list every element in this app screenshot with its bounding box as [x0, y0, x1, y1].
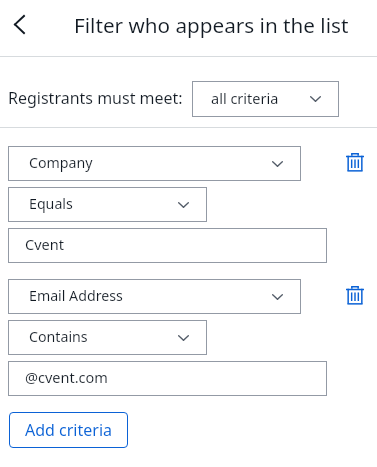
button[interactable]: Contains	[8, 320, 207, 355]
button[interactable]: @cvent.com	[8, 361, 327, 396]
staticText: Contains	[29, 327, 88, 346]
button[interactable]: Delete criteria	[337, 144, 373, 180]
button[interactable]: Email Address	[8, 279, 301, 314]
button[interactable]: Delete criteria	[337, 277, 373, 313]
button[interactable]: Add criteria	[9, 412, 128, 448]
staticText: @cvent.com	[25, 367, 108, 387]
staticText: Add criteria	[25, 419, 112, 441]
button[interactable]: all criteria	[192, 81, 339, 117]
staticText: Cvent	[25, 234, 64, 254]
button[interactable]: Cvent	[8, 228, 327, 263]
staticText: Registrants must meet:	[8, 87, 183, 109]
button[interactable]: Company	[8, 146, 301, 181]
staticText: Equals	[29, 194, 73, 213]
staticText: Filter who appears in the list	[74, 11, 349, 39]
staticText: all criteria	[211, 88, 279, 108]
staticText: Company	[29, 153, 93, 172]
button[interactable]: Back	[0, 5, 38, 43]
button[interactable]: Equals	[8, 187, 207, 222]
staticText: Email Address	[29, 286, 123, 305]
